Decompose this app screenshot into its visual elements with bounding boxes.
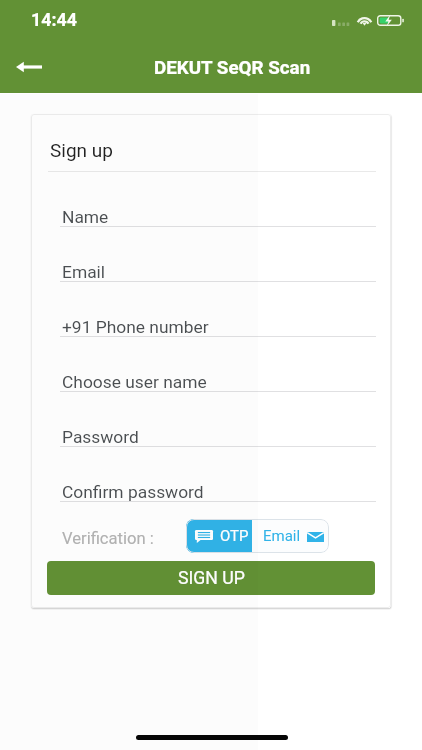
staticText: Name xyxy=(62,207,109,227)
staticText: Verification : xyxy=(62,529,154,548)
staticText: Sign up xyxy=(50,139,113,161)
staticText: Email xyxy=(263,527,301,545)
staticText: Choose user name xyxy=(62,372,207,392)
staticText: SIGN UP xyxy=(178,568,245,589)
staticText: OTP xyxy=(220,527,249,545)
button[interactable]: Email xyxy=(252,519,329,553)
staticText: +91 Phone number xyxy=(62,317,209,337)
button[interactable]: Back xyxy=(5,43,53,91)
staticText: 14:44 xyxy=(31,9,77,30)
button[interactable]: SIGN UP xyxy=(47,561,375,595)
staticText: Password xyxy=(62,427,139,447)
button[interactable]: OTP xyxy=(186,519,252,553)
staticText: Confirm password xyxy=(62,482,204,502)
staticText: DEKUT SeQR Scan xyxy=(154,57,311,79)
staticText: Email xyxy=(62,262,106,282)
